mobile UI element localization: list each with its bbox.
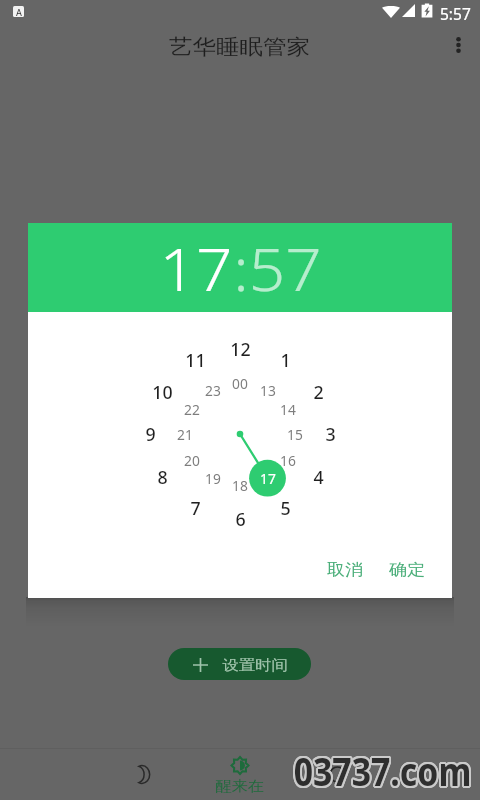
- staticText: 2: [313, 380, 324, 404]
- staticText: 5: [280, 496, 291, 520]
- staticText: 12: [230, 337, 251, 361]
- staticText: 8: [157, 465, 168, 489]
- staticText: 03737.com: [294, 742, 473, 796]
- staticText: 03737.com: [293, 744, 471, 798]
- staticText: 1: [280, 348, 291, 372]
- staticText: 20: [184, 451, 200, 470]
- staticText: 03737.com: [293, 745, 471, 799]
- staticText: 艺华睡眠管家: [169, 34, 310, 60]
- staticText: 03737.com: [294, 741, 473, 795]
- staticText: 7: [190, 496, 201, 520]
- staticText: 03737.com: [292, 743, 470, 797]
- staticText: 14: [280, 400, 296, 419]
- staticText: 9: [145, 422, 156, 446]
- button[interactable]: Sleep: [94, 748, 190, 800]
- staticText: 03737.com: [294, 743, 473, 797]
- staticText: 03737.com: [293, 741, 471, 795]
- staticText: 18: [232, 476, 248, 495]
- staticText: 设置时间: [222, 656, 288, 674]
- other: Sleep: [134, 765, 150, 784]
- button[interactable]: 醒来在: [192, 748, 288, 800]
- staticText: 取消: [327, 560, 363, 580]
- staticText: 22: [184, 400, 200, 419]
- staticText: 10: [152, 380, 173, 404]
- staticText: 03737.com: [293, 742, 471, 796]
- staticText: 03737.com: [294, 745, 473, 799]
- staticText: 03737.com: [292, 744, 470, 798]
- staticText: A: [16, 6, 22, 17]
- staticText: 5:57: [440, 3, 471, 24]
- staticText: 13: [260, 381, 276, 400]
- staticText: 03737.com: [292, 742, 470, 796]
- staticText: 03737.com: [294, 743, 472, 797]
- button[interactable]: More options: [434, 20, 480, 68]
- staticText: 03737.com: [294, 744, 472, 798]
- staticText: 03737.com: [294, 744, 473, 798]
- staticText: 03737.com: [294, 745, 472, 799]
- staticText: 03737.com: [294, 742, 472, 796]
- button[interactable]: 设置时间: [168, 648, 311, 680]
- staticText: 16: [280, 451, 296, 470]
- staticText: 03737.com: [293, 743, 471, 797]
- staticText: 19: [205, 469, 221, 488]
- staticText: 17: [160, 229, 233, 308]
- staticText: 03737.com: [295, 744, 474, 798]
- staticText: 确定: [389, 560, 425, 580]
- staticText: 03737.com: [294, 741, 472, 795]
- staticText: 15: [287, 425, 303, 444]
- staticText: 17: [260, 469, 276, 488]
- staticText: 00: [232, 374, 248, 393]
- button[interactable]: Settings: [289, 748, 385, 800]
- staticText: :57: [233, 229, 322, 308]
- button[interactable]: 确定: [380, 552, 434, 588]
- button[interactable]: 取消: [318, 552, 371, 588]
- staticText: 6: [235, 507, 246, 531]
- staticText: 4: [313, 465, 324, 489]
- staticText: 23: [205, 381, 221, 400]
- staticText: 21: [177, 425, 193, 444]
- staticText: 11: [185, 348, 206, 372]
- staticText: 03737.com: [295, 742, 474, 796]
- staticText: 3: [325, 422, 336, 446]
- staticText: 醒来在: [215, 777, 265, 795]
- other: Settings: [329, 766, 346, 783]
- staticText: 03737.com: [295, 743, 474, 797]
